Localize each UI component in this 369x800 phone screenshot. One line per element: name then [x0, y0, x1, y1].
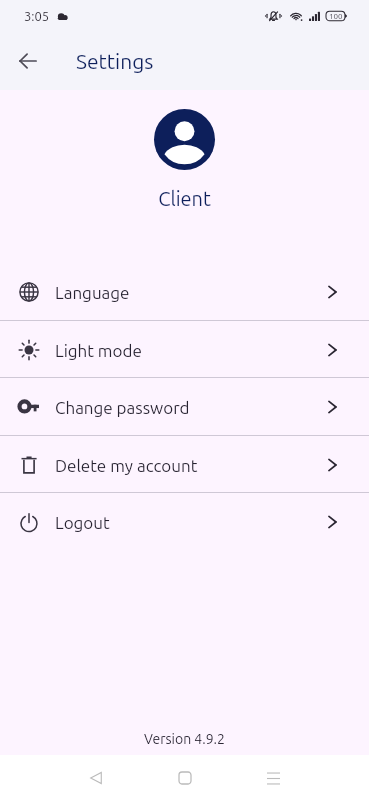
staticText: Logout: [55, 513, 110, 532]
button[interactable]: Back: [74, 756, 118, 800]
button[interactable]: Back: [8, 41, 48, 81]
staticText: 100: [329, 12, 343, 21]
staticText: Change password: [55, 398, 190, 417]
staticText: Language: [55, 283, 130, 302]
button[interactable]: Light mode: [0, 321, 369, 379]
button[interactable]: Delete my account: [0, 436, 369, 494]
staticText: Client: [0, 187, 369, 209]
staticText: Light mode: [55, 341, 142, 360]
staticText: Delete my account: [55, 456, 198, 475]
staticText: 3:05: [24, 9, 50, 24]
button[interactable]: Recent apps: [251, 756, 295, 800]
staticText: Settings: [76, 49, 154, 73]
button[interactable]: Home: [163, 756, 207, 800]
button[interactable]: Language: [0, 263, 369, 321]
staticText: Version 4.9.2: [0, 731, 369, 747]
button[interactable]: Logout: [0, 493, 369, 551]
button[interactable]: Change password: [0, 378, 369, 436]
